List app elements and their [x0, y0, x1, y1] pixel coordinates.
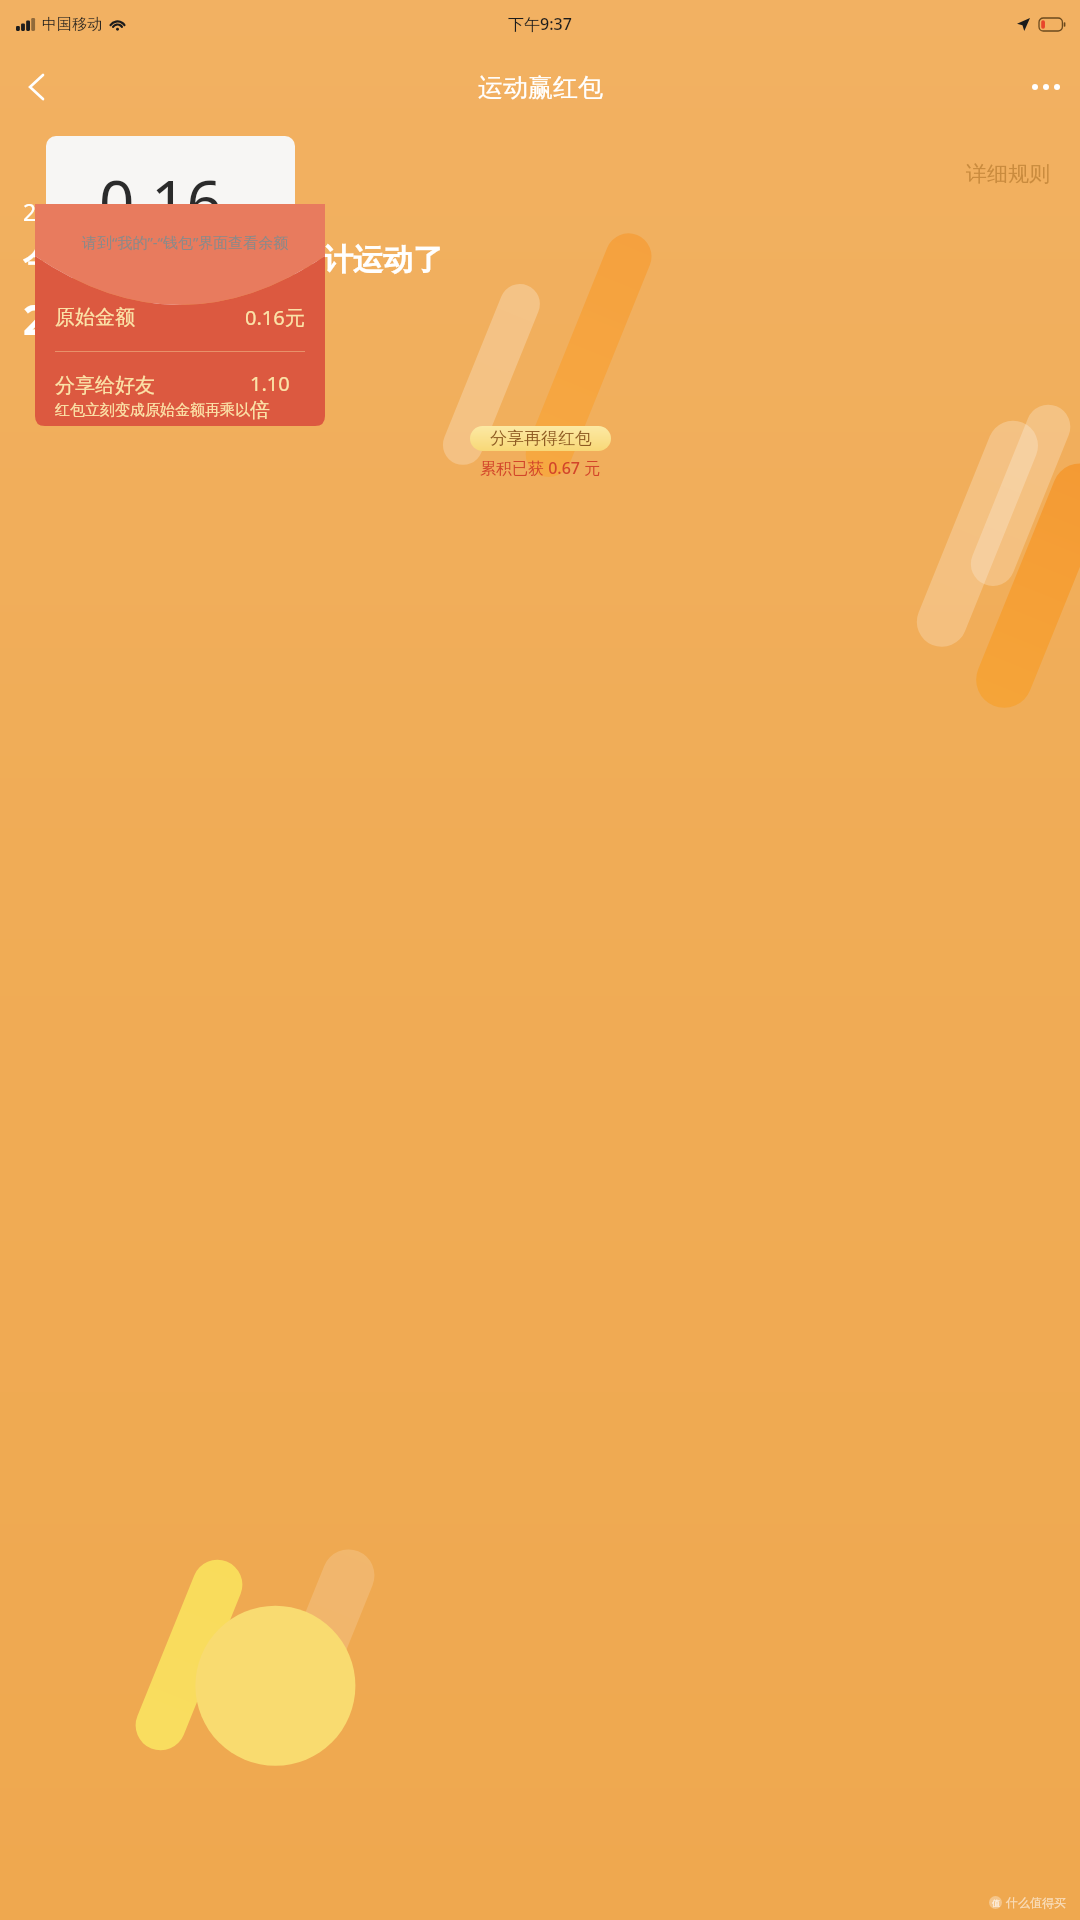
staticText: 分享给好友 [55, 373, 155, 398]
staticText: 原始金额 [55, 305, 135, 330]
staticText: 下午9:37 [508, 13, 572, 35]
staticText: 请到“我的”-“钱包”界面查看余额 [82, 232, 289, 252]
button[interactable]: 分享给好友 [55, 370, 305, 423]
button[interactable]: 原始金额 [55, 304, 305, 331]
staticText: 2.63公里 [23, 291, 187, 347]
staticText: 2018年12月16日 [23, 196, 198, 227]
button[interactable]: 详细规则 [958, 155, 1058, 193]
staticText: 0.16元 [245, 304, 305, 331]
button[interactable]: 更多 [1022, 63, 1070, 111]
staticText: 0.16 [99, 159, 223, 243]
staticText: 分享再得红包 [490, 428, 592, 449]
button[interactable]: 返回 [12, 63, 60, 111]
staticText: 累积已获 0.67 元 [480, 457, 601, 479]
staticText: 红包立刻变成原始金额再乘以 [55, 401, 250, 420]
staticText: 运动赢红包 [478, 72, 603, 103]
staticText: 中国移动 [42, 15, 102, 34]
staticText: 详细规则 [966, 161, 1050, 187]
staticText: 什么值得买 [1006, 1895, 1066, 1910]
staticText: 值 [992, 1898, 1000, 1908]
staticText: 今天你的智能运动鞋共计运动了 [23, 241, 443, 279]
button[interactable]: 分享再得红包 [470, 426, 611, 451]
staticText: 1.10倍 [250, 370, 305, 423]
